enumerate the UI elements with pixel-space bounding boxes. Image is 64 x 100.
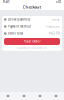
button[interactable]: Delivery address [2,16,62,23]
staticText: Payment method [8,25,31,28]
staticText: $42.00 [49,32,60,35]
button[interactable]: Cart [32,92,48,100]
button[interactable]: Place Order [4,38,60,45]
staticText: Visa 4242 [46,25,60,28]
staticText: oOI [56,0,61,4]
button[interactable]: Order total [2,30,62,37]
button[interactable]: Payment method [2,23,62,30]
staticText: Home [52,18,60,21]
staticText: Delivery address [8,18,30,21]
staticText: Checkout [22,4,41,10]
staticText: Order total [8,32,23,35]
staticText: By placing this order you agree to the T… [17,47,47,49]
staticText: Place Order [23,40,40,43]
button[interactable]: Home [0,92,16,100]
button[interactable]: Profile [48,92,64,100]
staticText: 9:41 [3,0,10,4]
button[interactable]: Search [16,92,32,100]
